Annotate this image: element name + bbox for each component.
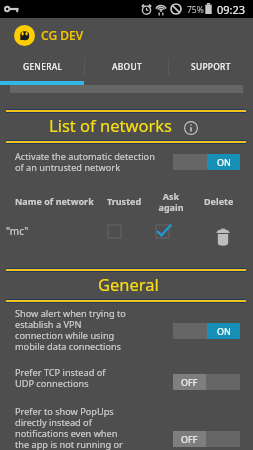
staticText: Show alert when trying to establish a VP… bbox=[15, 307, 126, 352]
button[interactable]: Ask again bbox=[156, 225, 169, 238]
staticText: Prefer to show PopUps directly instead o… bbox=[15, 405, 123, 450]
staticText: 75% bbox=[187, 4, 204, 16]
staticText: 09:23 bbox=[217, 2, 246, 17]
staticText: Prefer TCP instead of UDP connections bbox=[15, 366, 106, 389]
staticText: "mc" bbox=[6, 224, 29, 238]
staticText: Ask again bbox=[147, 190, 195, 213]
staticText: GENERAL bbox=[23, 61, 63, 72]
staticText: ON bbox=[217, 325, 231, 337]
staticText: CG DEV bbox=[41, 27, 84, 43]
button[interactable]: Delete bbox=[216, 228, 230, 246]
button[interactable]: Toggle off bbox=[173, 374, 240, 390]
button[interactable]: GENERAL bbox=[0, 52, 85, 81]
staticText: Activate the automatic detection of an u… bbox=[15, 150, 155, 173]
staticText: Trusted bbox=[107, 195, 142, 207]
staticText: Name of network bbox=[15, 195, 94, 207]
button[interactable]: Toggle on bbox=[173, 323, 240, 339]
staticText: Delete bbox=[204, 195, 234, 207]
staticText: List of networks bbox=[49, 114, 172, 136]
staticText: General bbox=[98, 273, 159, 295]
staticText: OFF bbox=[181, 376, 198, 388]
button[interactable]: Trusted bbox=[108, 225, 121, 238]
staticText: ABOUT bbox=[112, 61, 142, 72]
button[interactable]: Toggle on bbox=[173, 154, 240, 170]
staticText: SUPPORT bbox=[191, 61, 231, 72]
button[interactable]: SUPPORT bbox=[169, 52, 253, 81]
staticText: ON bbox=[217, 156, 231, 168]
staticText: OFF bbox=[181, 433, 198, 445]
button[interactable]: Toggle off bbox=[173, 431, 240, 447]
button[interactable]: ABOUT bbox=[85, 52, 169, 81]
button[interactable]: Info bbox=[183, 120, 198, 135]
